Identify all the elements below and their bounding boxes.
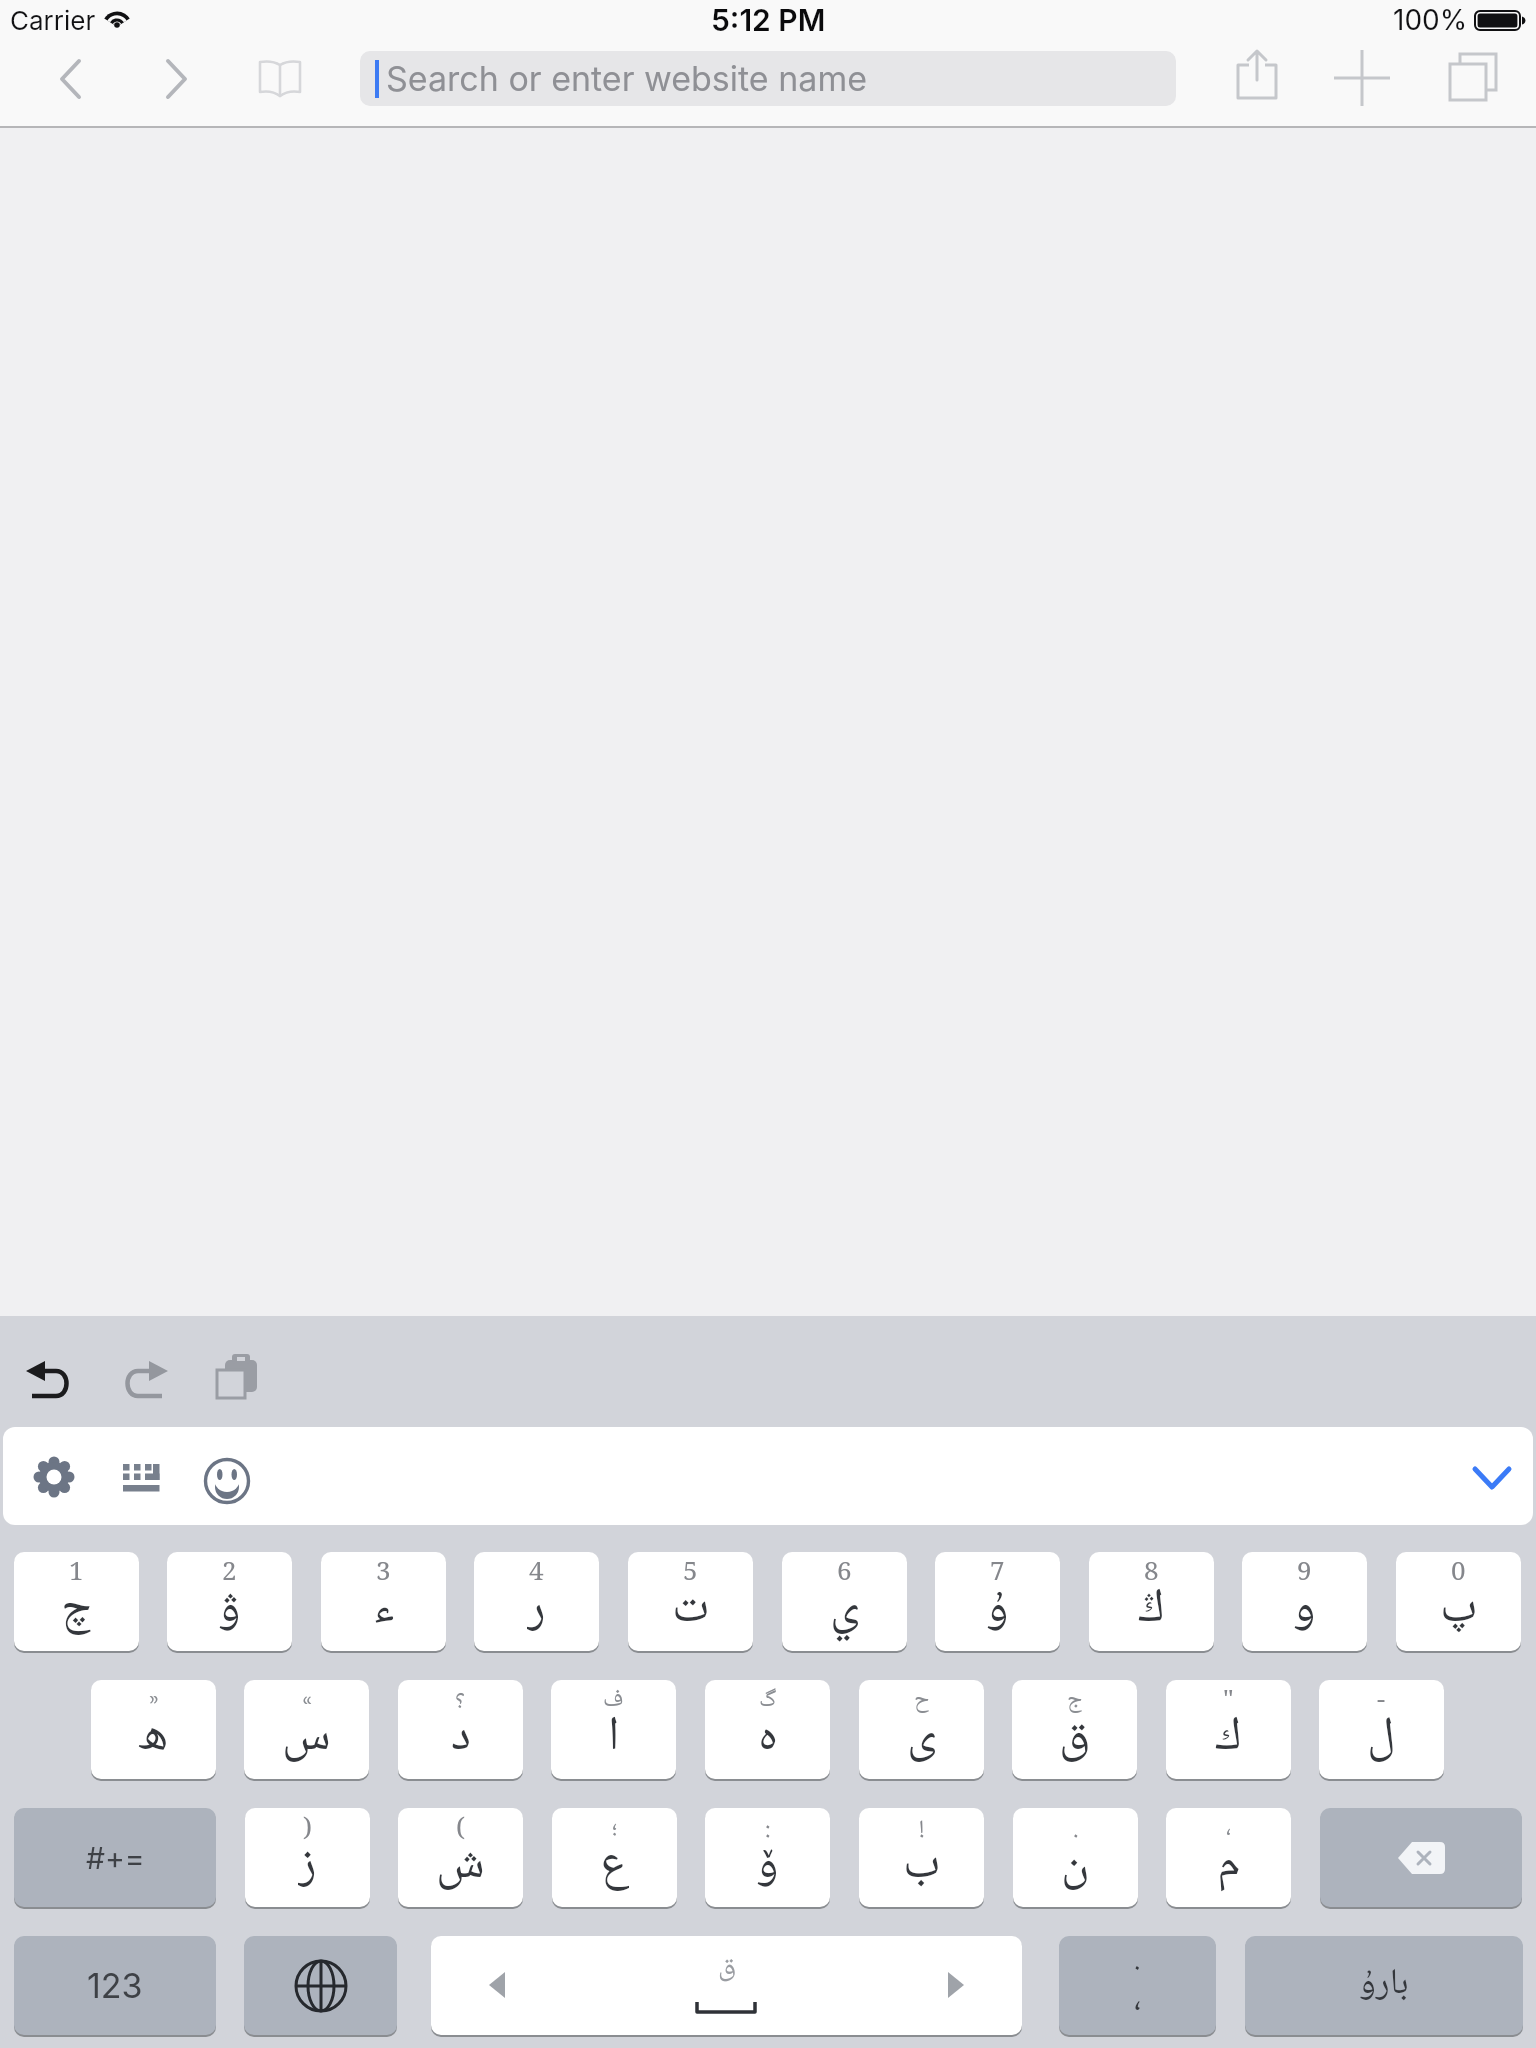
staticText: ق (1059, 1698, 1091, 1779)
button[interactable] (204, 1458, 250, 1504)
staticText: 2 (222, 1552, 237, 1590)
staticText: ج (1067, 1680, 1083, 1718)
button[interactable]: ( (398, 1808, 523, 1907)
button[interactable]: 0 (1396, 1552, 1521, 1651)
button[interactable]: 1 (14, 1552, 139, 1651)
button[interactable] (1472, 1466, 1512, 1492)
button[interactable]: ج (1012, 1680, 1137, 1779)
button[interactable]: : (705, 1808, 830, 1907)
staticText: پ (1440, 1570, 1478, 1651)
staticText: 1 (69, 1552, 84, 1590)
button[interactable] (1234, 48, 1280, 102)
staticText: ۇ (986, 1570, 1009, 1651)
button[interactable]: Search or enter website name (360, 51, 1176, 106)
staticText: ە (758, 1698, 778, 1779)
staticText: ر (527, 1570, 546, 1651)
button[interactable] (254, 58, 306, 102)
button[interactable]: . (1059, 1936, 1216, 2035)
staticText: 0 (1451, 1552, 1466, 1590)
staticText: #+= (86, 1840, 145, 1876)
staticText: Carrier (10, 5, 96, 36)
staticText: 5:12 PM (711, 2, 826, 38)
staticText: 3 (376, 1552, 391, 1590)
button[interactable]: " (1166, 1680, 1291, 1779)
button[interactable]: 3 (321, 1552, 446, 1651)
staticText: » (149, 1680, 159, 1718)
button[interactable]: ح (859, 1680, 984, 1779)
staticText: ل (1367, 1698, 1396, 1779)
staticText: ڭ (1138, 1570, 1165, 1651)
button[interactable]: 5 (628, 1552, 753, 1651)
button[interactable]: » (91, 1680, 216, 1779)
staticText: ء (373, 1570, 394, 1651)
button[interactable]: ف (551, 1680, 676, 1779)
button[interactable] (122, 1464, 162, 1492)
staticText: ي (830, 1570, 860, 1651)
button[interactable]: گ (705, 1680, 830, 1779)
staticText: 100% (1393, 3, 1468, 37)
staticText: ھ (138, 1698, 169, 1779)
button[interactable]: ، (1166, 1808, 1291, 1907)
button[interactable] (212, 1354, 260, 1402)
staticText: 5 (683, 1552, 698, 1590)
staticText: و (1293, 1570, 1316, 1651)
staticText: ۆ (756, 1826, 779, 1907)
button[interactable] (244, 1936, 397, 2035)
button[interactable]: بارۇ (1245, 1936, 1523, 2035)
staticText: ؛ (612, 1808, 618, 1846)
button[interactable]: 6 (782, 1552, 907, 1651)
staticText: ب (903, 1826, 941, 1907)
staticText: ع (600, 1826, 629, 1907)
staticText: . (1073, 1808, 1079, 1846)
button[interactable]: 2 (167, 1552, 292, 1651)
button[interactable] (58, 58, 84, 100)
staticText: . (1134, 1936, 1141, 1987)
button[interactable]: ! (859, 1808, 984, 1907)
staticText: 123 (87, 1965, 143, 2006)
button[interactable] (118, 1356, 170, 1400)
button[interactable]: ؟ (398, 1680, 523, 1779)
button[interactable] (163, 58, 189, 100)
staticText: س (282, 1698, 331, 1779)
staticText: ( (456, 1808, 465, 1846)
staticText: ت (672, 1570, 710, 1651)
staticText: ك (1215, 1698, 1242, 1779)
staticText: 4 (529, 1552, 544, 1590)
button[interactable]: ؛ (552, 1808, 677, 1907)
staticText: ن (1061, 1826, 1090, 1907)
staticText: گ (759, 1680, 777, 1718)
staticText: " (1223, 1680, 1234, 1718)
staticText: 8 (1144, 1552, 1159, 1590)
staticText: ى (907, 1698, 937, 1779)
button[interactable]: - (1319, 1680, 1444, 1779)
staticText: ، (1134, 1972, 1142, 2030)
button[interactable]: ق (431, 1936, 1022, 2035)
button[interactable] (24, 1356, 76, 1400)
button[interactable]: #+= (14, 1808, 216, 1907)
staticText: ز (298, 1826, 317, 1907)
staticText: ۋ (218, 1570, 241, 1651)
staticText: ا (608, 1698, 620, 1779)
button[interactable] (1446, 52, 1498, 104)
button[interactable]: 9 (1242, 1552, 1367, 1651)
staticText: ) (303, 1808, 312, 1846)
staticText: 9 (1297, 1552, 1312, 1590)
button[interactable]: ) (245, 1808, 370, 1907)
button[interactable] (1334, 50, 1390, 106)
staticText: ح (914, 1680, 930, 1718)
staticText: د (451, 1698, 471, 1779)
staticText: - (1377, 1680, 1386, 1718)
button[interactable]: . (1013, 1808, 1138, 1907)
button[interactable]: 7 (935, 1552, 1060, 1651)
staticText: ، (1226, 1808, 1232, 1846)
staticText: 7 (990, 1552, 1005, 1590)
staticText: ق (718, 1944, 737, 1992)
staticText: Search or enter website name (386, 58, 868, 99)
button[interactable]: 123 (14, 1936, 216, 2035)
staticText: ش (436, 1826, 485, 1907)
button[interactable]: « (244, 1680, 369, 1779)
button[interactable]: 8 (1089, 1552, 1214, 1651)
button[interactable] (34, 1457, 74, 1497)
button[interactable] (1320, 1808, 1522, 1907)
button[interactable]: 4 (474, 1552, 599, 1651)
